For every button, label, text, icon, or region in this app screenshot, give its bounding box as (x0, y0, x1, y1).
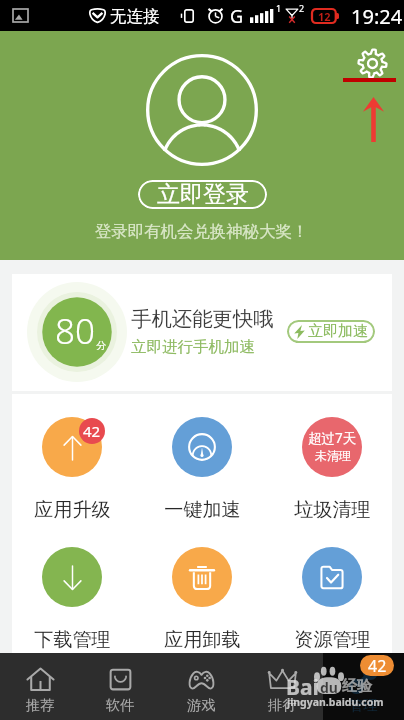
staticText: 排行 (268, 696, 297, 714)
staticText: 2 (299, 2, 305, 14)
staticText: 一键加速 (164, 498, 241, 522)
staticText: 应用升级 (34, 498, 111, 522)
staticText: Bai (286, 673, 319, 702)
staticText: 管理 (349, 696, 378, 714)
staticText: 80 (55, 307, 95, 355)
button[interactable]: 游戏 (161, 653, 242, 720)
staticText: 推荐 (26, 696, 55, 714)
button[interactable]: 应用卸载 (137, 547, 267, 652)
button[interactable]: Settings (350, 41, 394, 85)
staticText: 垃圾清理 (294, 498, 371, 522)
staticText: 分 (96, 339, 106, 352)
button[interactable]: 排行 (242, 653, 323, 720)
staticText: 资源管理 (294, 628, 371, 652)
button[interactable]: 42 (7, 417, 137, 522)
staticText: 立即加速 (308, 322, 368, 341)
staticText: 经验 (342, 677, 372, 696)
button[interactable]: 软件 (80, 653, 161, 720)
button[interactable]: 一键加速 (137, 417, 267, 522)
staticText: 42 (368, 655, 387, 676)
staticText: 42 (83, 421, 101, 441)
staticText: G (230, 4, 244, 29)
staticText: 1 (276, 2, 282, 14)
staticText: 软件 (106, 696, 135, 714)
staticText: 应用卸载 (164, 628, 241, 652)
staticText: 未清理 (315, 448, 351, 463)
staticText: 无连接 (110, 6, 160, 27)
staticText: du (320, 678, 338, 697)
staticText: 游戏 (187, 696, 216, 714)
staticText: 超过7天 (308, 429, 357, 447)
button[interactable]: 管理 (323, 653, 404, 720)
button[interactable]: 超过7天 (267, 417, 397, 522)
staticText: 12 (318, 9, 331, 23)
staticText: 立即登录 (157, 180, 249, 209)
button[interactable]: 推荐 (0, 653, 80, 720)
staticText: 登录即有机会兑换神秘大奖！ (95, 221, 309, 242)
staticText: 手机还能更快哦 (131, 306, 274, 332)
button[interactable]: 资源管理 (267, 547, 397, 652)
staticText: jingyan.baidu.com (287, 695, 384, 709)
staticText: 19:24 (351, 3, 403, 30)
staticText: 下载管理 (34, 628, 111, 652)
button[interactable]: 立即加速 (287, 320, 375, 343)
button[interactable]: 立即登录 (138, 180, 267, 209)
button[interactable]: 下载管理 (7, 547, 137, 652)
staticText: 立即进行手机加速 (131, 337, 255, 357)
